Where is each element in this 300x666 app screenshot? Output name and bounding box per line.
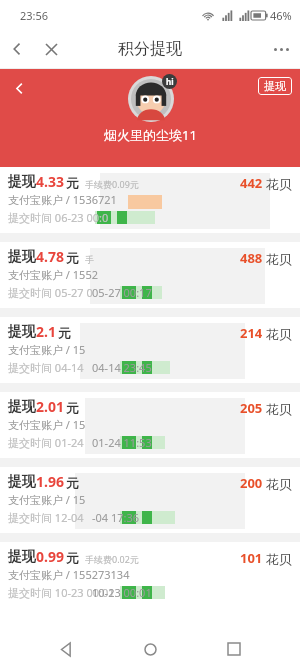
staticText: 花贝 bbox=[266, 551, 292, 567]
staticText: 元 bbox=[66, 250, 79, 266]
staticText: 手续费0.09元 bbox=[85, 178, 139, 190]
button[interactable]: Back bbox=[4, 73, 34, 103]
button[interactable]: Back bbox=[48, 632, 84, 666]
staticText: 花贝 bbox=[266, 476, 292, 492]
staticText: 元 bbox=[66, 400, 79, 416]
staticText: 2.01 bbox=[36, 397, 64, 416]
staticText: 提现 bbox=[8, 323, 36, 341]
button[interactable]: More options bbox=[262, 30, 300, 68]
button[interactable]: 提现 bbox=[0, 317, 300, 383]
staticText: 01-24 11:53 bbox=[92, 435, 152, 450]
staticText: 支付宝账户 / 15 bbox=[8, 417, 86, 432]
staticText: 花贝 bbox=[266, 251, 292, 267]
staticText: 提现 bbox=[264, 79, 286, 93]
staticText: 烟火里的尘埃11 bbox=[104, 126, 197, 144]
staticText: 手 bbox=[85, 254, 94, 265]
staticText: 支付宝账户 / 155273134 bbox=[8, 567, 130, 582]
button[interactable]: 提现 bbox=[258, 77, 292, 95]
staticText: 提交时间 06-23 00:0 bbox=[8, 210, 109, 225]
staticText: -04 17:36 bbox=[92, 510, 140, 525]
staticText: 手续费0.02元 bbox=[85, 553, 139, 565]
staticText: 元 bbox=[66, 550, 79, 566]
button[interactable]: 提现 bbox=[0, 242, 300, 308]
staticText: 提现 bbox=[8, 473, 36, 491]
staticText: 提交时间 01-24 bbox=[8, 435, 84, 450]
staticText: 提现 bbox=[8, 173, 36, 191]
staticText: 元 bbox=[66, 175, 79, 191]
staticText: 214 bbox=[240, 324, 263, 342]
staticText: 支付宝账户 / 1552 bbox=[8, 267, 98, 282]
button[interactable]: Recent apps bbox=[216, 632, 252, 666]
staticText: 1.96 bbox=[36, 472, 64, 491]
staticText: 提交时间 12-04 bbox=[8, 510, 84, 525]
button[interactable]: Home bbox=[132, 632, 168, 666]
staticText: 4.33 bbox=[36, 172, 64, 191]
staticText: 提现 bbox=[8, 548, 36, 566]
button[interactable]: 提现 bbox=[0, 467, 300, 533]
staticText: 提现 bbox=[8, 398, 36, 416]
staticText: 0.99 bbox=[36, 547, 64, 566]
staticText: 积分提现 bbox=[118, 39, 182, 59]
staticText: 提交时间 10-23 00:01 bbox=[8, 585, 115, 600]
staticText: 4.78 bbox=[36, 247, 64, 266]
staticText: 支付宝账户 / 1536721 bbox=[8, 192, 117, 207]
staticText: 提交时间 05-27 0 bbox=[8, 285, 93, 300]
staticText: 元 bbox=[58, 325, 71, 341]
staticText: hi bbox=[166, 76, 174, 87]
staticText: 488 bbox=[240, 249, 263, 267]
staticText: 05-27 00:17 bbox=[92, 285, 152, 300]
staticText: 花贝 bbox=[266, 401, 292, 417]
staticText: 支付宝账户 / 15 bbox=[8, 492, 86, 507]
staticText: 元 bbox=[66, 475, 79, 491]
staticText: 花贝 bbox=[266, 176, 292, 192]
staticText: 提现 bbox=[8, 248, 36, 266]
staticText: 支付宝账户 / 15 bbox=[8, 342, 86, 357]
staticText: 提交时间 04-14 bbox=[8, 360, 84, 375]
staticText: 442 bbox=[240, 174, 263, 192]
staticText: 200 bbox=[240, 474, 263, 492]
button[interactable]: 提现 bbox=[0, 392, 300, 458]
staticText: 46% bbox=[270, 8, 292, 23]
staticText: 23:56 bbox=[20, 8, 49, 23]
staticText: 04-14 23:45 bbox=[92, 360, 152, 375]
button[interactable]: Back bbox=[0, 32, 34, 66]
staticText: 2.1 bbox=[36, 322, 56, 341]
button[interactable]: 提现 bbox=[0, 542, 300, 608]
staticText: 10-23 00:01 bbox=[92, 585, 152, 600]
staticText: 205 bbox=[240, 399, 263, 417]
staticText: 花贝 bbox=[266, 326, 292, 342]
staticText: 101 bbox=[240, 549, 263, 567]
button[interactable]: Close bbox=[34, 32, 68, 66]
button[interactable]: 提现 bbox=[0, 167, 300, 233]
